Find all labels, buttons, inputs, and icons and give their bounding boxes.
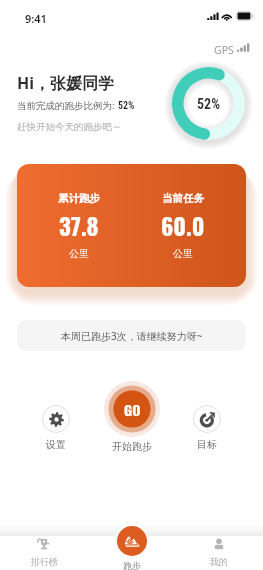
button[interactable]: Settings [31, 405, 81, 451]
button[interactable]: 跑步 [106, 524, 158, 570]
staticText: 跑步 [123, 560, 141, 570]
button[interactable]: GO [104, 381, 160, 453]
button[interactable]: Profile [193, 538, 245, 567]
staticText: 本周已跑步3次，请继续努力呀~ [61, 329, 203, 343]
staticText: Hi，张媛同学 [17, 72, 115, 94]
staticText: 60.0 [161, 209, 205, 243]
staticText: 9:41 [25, 11, 47, 26]
staticText: GPS [214, 43, 234, 57]
staticText: 公里 [69, 247, 89, 260]
staticText: 37.8 [59, 209, 99, 243]
staticText: 累计跑步 [58, 192, 100, 205]
staticText: 当前完成的跑步比例为: [17, 99, 115, 112]
staticText: 赶快开始今天的跑步吧～ [17, 121, 122, 133]
staticText: 我的 [210, 556, 228, 567]
staticText: 目标 [197, 438, 217, 451]
button[interactable]: Goal [182, 405, 232, 451]
staticText: GO [124, 399, 141, 420]
button[interactable]: Leaderboard [18, 538, 70, 567]
button[interactable]: 本周已跑步3次，请继续努力呀~ [17, 320, 246, 351]
staticText: 52% [118, 100, 135, 112]
staticText: 开始跑步 [112, 440, 152, 453]
staticText: 当前任务 [162, 192, 204, 205]
staticText: 设置 [46, 438, 66, 451]
staticText: 52% [197, 96, 221, 112]
button[interactable]: 累计跑步 [17, 164, 246, 287]
staticText: 排行榜 [31, 556, 58, 567]
staticText: 公里 [173, 247, 193, 260]
